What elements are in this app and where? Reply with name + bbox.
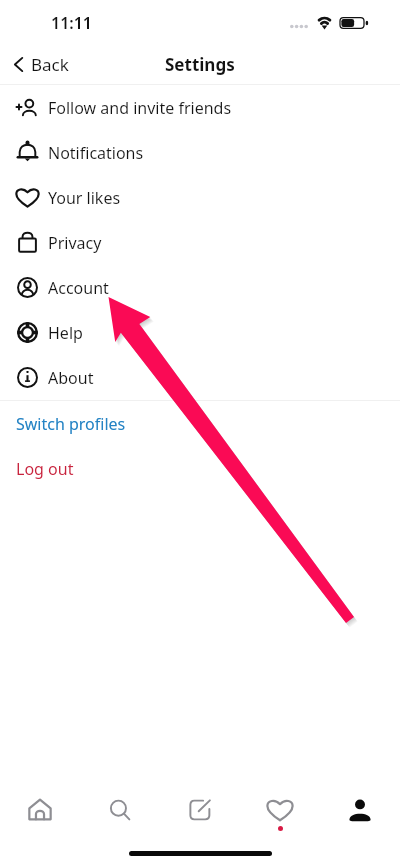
staticText: About <box>48 367 94 389</box>
button[interactable]: Profile <box>329 783 391 837</box>
button[interactable]: Log out <box>0 446 400 491</box>
staticText: 11:11 <box>51 12 93 34</box>
button[interactable]: Your likes <box>0 175 400 220</box>
button[interactable]: Back <box>0 47 79 82</box>
button[interactable]: Notifications <box>0 130 400 175</box>
staticText: Privacy <box>48 232 102 254</box>
staticText: Settings <box>165 53 235 76</box>
button[interactable]: Home <box>9 783 71 837</box>
button[interactable]: Search <box>89 783 151 837</box>
button[interactable]: Switch profiles <box>0 401 400 446</box>
button[interactable]: Activity <box>249 783 311 837</box>
button[interactable]: Create <box>169 783 231 837</box>
staticText: Account <box>48 277 109 299</box>
staticText: Your likes <box>48 187 121 209</box>
button[interactable]: Help <box>0 310 400 355</box>
staticText: Log out <box>16 458 74 480</box>
button[interactable]: Account <box>0 265 400 310</box>
staticText: Notifications <box>48 142 144 164</box>
staticText: Help <box>48 322 83 344</box>
button[interactable]: Privacy <box>0 220 400 265</box>
staticText: Switch profiles <box>16 413 126 435</box>
staticText: Back <box>31 53 69 76</box>
staticText: Follow and invite friends <box>48 97 232 119</box>
button[interactable]: About <box>0 355 400 400</box>
button[interactable]: Follow and invite friends <box>0 85 400 130</box>
